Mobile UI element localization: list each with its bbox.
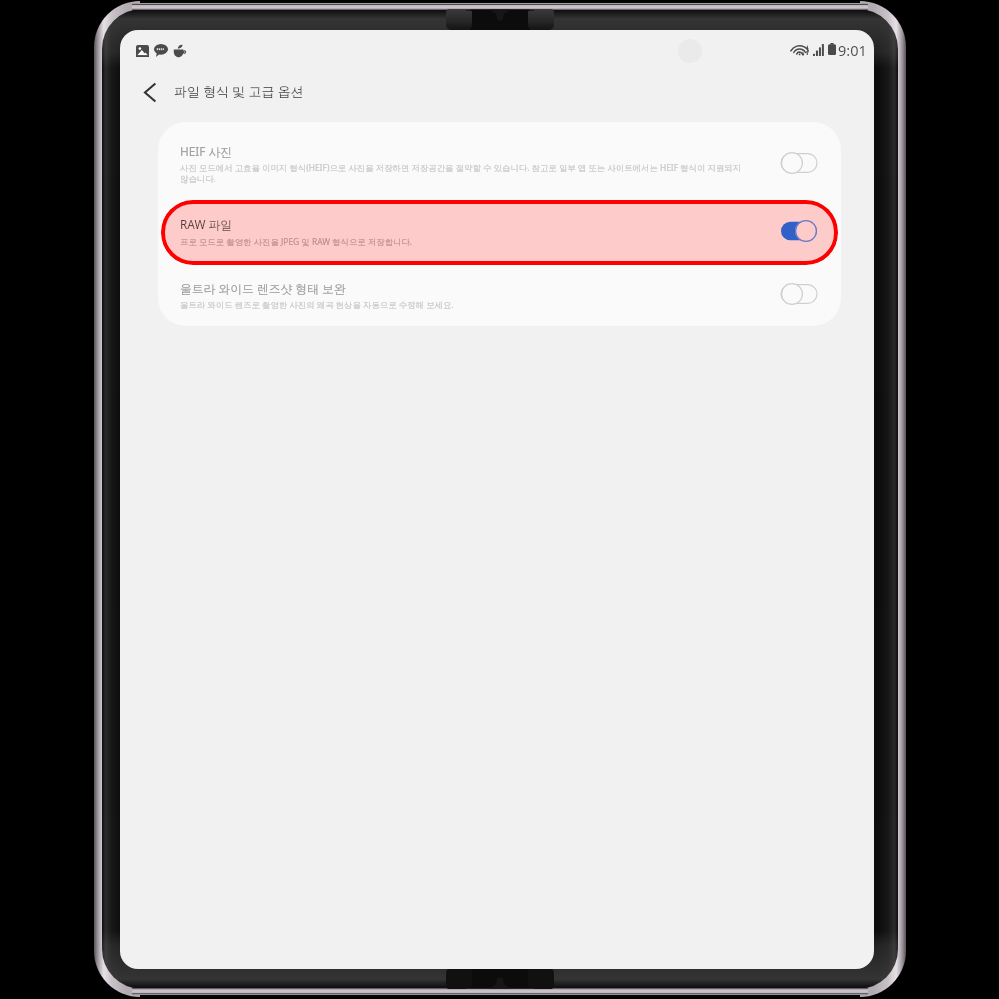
staticText: 울트라 와이드 렌즈로 촬영한 사진의 왜곡 현상을 자동으로 수정해 보세요.	[180, 299, 454, 310]
staticText: RAW 파일	[180, 216, 233, 232]
button[interactable]: 울트라 와이드 렌즈샷 형태 보완	[158, 277, 841, 326]
button[interactable]: Back	[130, 72, 170, 112]
staticText: HEIF 사진	[180, 143, 233, 159]
button[interactable]: RAW 파일	[161, 200, 838, 265]
staticText: 울트라 와이드 렌즈샷 형태 보완	[180, 280, 346, 296]
staticText: 파일 형식 및 고급 옵션	[174, 82, 304, 100]
staticText: 프로 모드로 촬영한 사진을 JPEG 및 RAW 형식으로 저장합니다.	[180, 236, 413, 247]
button[interactable]: HEIF 사진	[158, 122, 841, 199]
staticText: 9:01	[838, 40, 867, 60]
staticText: 사진 모드에서 고효율 이미지 형식(HEIF)으로 사진을 저장하면 저장공간…	[180, 162, 742, 185]
